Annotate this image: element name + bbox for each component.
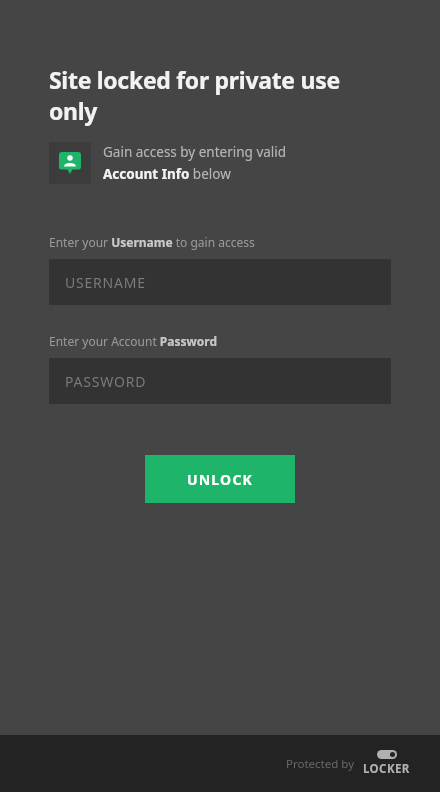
staticText: Protected by bbox=[286, 756, 354, 772]
staticText: Enter your Username to gain access bbox=[49, 234, 255, 250]
staticText: Enter your Account Password bbox=[49, 333, 218, 349]
staticText: UNLOCK bbox=[187, 470, 254, 489]
staticText: LOCKER bbox=[363, 761, 410, 777]
button[interactable]: PASSWORD bbox=[49, 358, 391, 404]
staticText: Site locked for private use only bbox=[49, 64, 391, 126]
staticText: Gain access by entering valid bbox=[103, 143, 287, 161]
staticText: Account Info below bbox=[103, 165, 231, 183]
staticText: PASSWORD bbox=[65, 372, 147, 391]
button[interactable]: USERNAME bbox=[49, 259, 391, 305]
button[interactable]: UNLOCK bbox=[145, 455, 295, 503]
other: Account bbox=[59, 152, 81, 174]
staticText: USERNAME bbox=[65, 273, 146, 292]
